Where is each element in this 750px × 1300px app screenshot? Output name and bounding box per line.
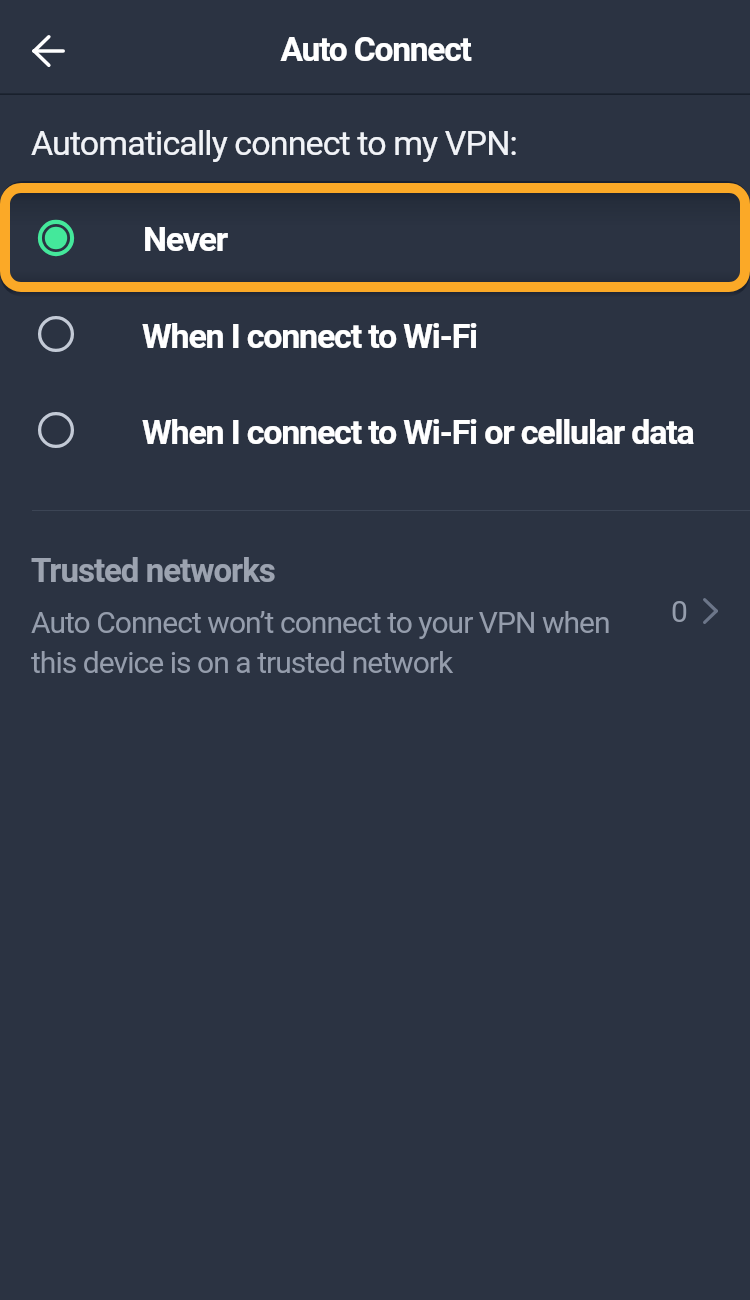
staticText: Trusted networks (31, 551, 275, 590)
staticText: Never (143, 219, 227, 259)
button[interactable]: Never (0, 183, 750, 292)
button[interactable]: Trusted networks (0, 535, 750, 690)
button[interactable]: When I connect to Wi-Fi or cellular data (0, 388, 750, 484)
staticText: 0 (671, 594, 688, 629)
staticText: Auto Connect won’t connect to your VPN w… (31, 605, 631, 680)
button[interactable]: Navigate up (14, 17, 82, 85)
staticText: Auto Connect (280, 30, 471, 69)
staticText: When I connect to Wi-Fi or cellular data (142, 412, 694, 452)
staticText: Automatically connect to my VPN: (31, 123, 517, 163)
staticText: When I connect to Wi-Fi (142, 316, 477, 356)
button[interactable]: When I connect to Wi-Fi (0, 292, 750, 388)
